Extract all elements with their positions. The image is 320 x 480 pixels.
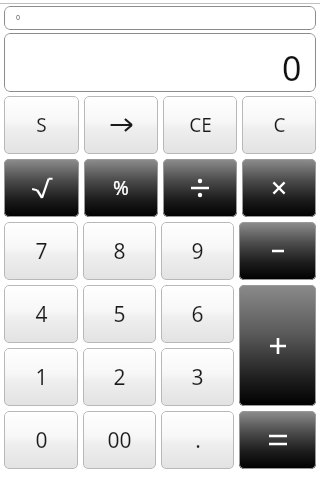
staticText: . xyxy=(195,426,201,455)
staticText: 8 xyxy=(113,237,126,266)
button[interactable]: Square root xyxy=(4,159,79,217)
staticText: 3 xyxy=(191,363,204,392)
staticText: C xyxy=(273,112,286,138)
button[interactable]: Plus xyxy=(239,285,316,406)
staticText: CE xyxy=(189,112,212,138)
button[interactable]: 5 xyxy=(83,285,156,343)
button[interactable]: 2 xyxy=(83,348,156,406)
staticText: 2 xyxy=(113,363,126,392)
staticText: 0 xyxy=(35,426,48,455)
button[interactable]: 6 xyxy=(161,285,234,343)
button[interactable]: 9 xyxy=(161,222,234,280)
button[interactable]: C xyxy=(242,96,316,154)
button[interactable]: 8 xyxy=(83,222,156,280)
staticText: 4 xyxy=(35,300,48,329)
button[interactable]: 00 xyxy=(83,411,156,469)
button[interactable]: 3 xyxy=(161,348,234,406)
button[interactable]: S xyxy=(4,96,79,154)
staticText: 00 xyxy=(107,426,132,455)
button[interactable]: 4 xyxy=(4,285,78,343)
staticText: S xyxy=(36,112,47,138)
staticText: % xyxy=(113,175,129,201)
staticText: 1 xyxy=(35,363,48,392)
staticText: 0 xyxy=(16,13,21,23)
button[interactable]: 0 xyxy=(4,33,316,92)
button[interactable]: 0 xyxy=(4,411,78,469)
button[interactable]: CE xyxy=(163,96,237,154)
button[interactable]: Backspace xyxy=(84,96,158,154)
staticText: 0 xyxy=(282,45,302,91)
button[interactable]: 7 xyxy=(4,222,78,280)
staticText: 5 xyxy=(113,300,126,329)
button[interactable]: Divide xyxy=(163,159,237,217)
button[interactable]: Equals xyxy=(239,411,316,469)
button[interactable]: . xyxy=(161,411,234,469)
button[interactable]: 0 xyxy=(4,6,316,30)
button[interactable]: Minus xyxy=(239,222,316,280)
staticText: 7 xyxy=(35,237,48,266)
button[interactable]: % xyxy=(84,159,158,217)
button[interactable]: 1 xyxy=(4,348,78,406)
staticText: 9 xyxy=(191,237,204,266)
button[interactable]: Multiply xyxy=(242,159,316,217)
staticText: 6 xyxy=(191,300,204,329)
